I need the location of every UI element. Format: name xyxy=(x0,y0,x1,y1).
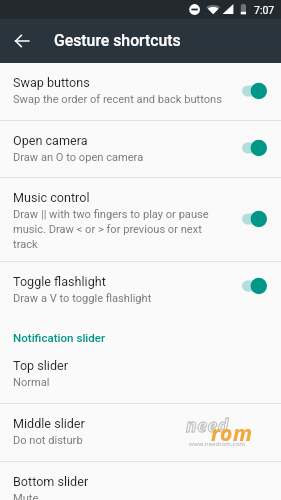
button[interactable]: Toggle xyxy=(242,139,267,157)
button[interactable]: Open camera xyxy=(0,121,281,177)
staticText: 7:07 xyxy=(254,4,275,16)
button[interactable]: Music control xyxy=(0,178,281,261)
staticText: Draw || with two fingers to play or paus… xyxy=(13,208,229,251)
staticText: Mute xyxy=(13,492,39,500)
button[interactable]: Toggle xyxy=(242,82,267,100)
staticText: www.needrom.com xyxy=(189,439,245,447)
button[interactable]: Back xyxy=(8,27,36,55)
staticText: Normal xyxy=(13,376,50,389)
staticText: Do not disturb xyxy=(13,434,83,447)
button[interactable]: Swap buttons xyxy=(0,63,281,120)
staticText: Swap the order of recent and back button… xyxy=(13,93,222,106)
staticText: Toggle flashlight xyxy=(13,274,106,289)
staticText: Bottom slider xyxy=(13,474,89,489)
staticText: need xyxy=(186,413,229,437)
staticText: Middle slider xyxy=(13,416,85,431)
staticText: Notification slider xyxy=(13,331,106,345)
button[interactable]: Middle slider xyxy=(0,404,281,461)
staticText: Open camera xyxy=(13,133,88,148)
staticText: Gesture shortcuts xyxy=(54,31,181,50)
button[interactable]: Toggle flashlight xyxy=(0,262,281,311)
button[interactable]: Top slider xyxy=(0,346,281,403)
button[interactable]: Bottom slider xyxy=(0,462,281,500)
button[interactable]: Toggle xyxy=(242,277,267,295)
staticText: Swap buttons xyxy=(13,75,90,90)
staticText: rom xyxy=(211,419,253,448)
staticText: Music control xyxy=(13,190,90,205)
staticText: Draw an O to open camera xyxy=(13,151,144,164)
staticText: Draw a V to toggle flashlight xyxy=(13,292,152,305)
staticText: Top slider xyxy=(13,358,68,373)
button[interactable]: Toggle xyxy=(242,210,267,228)
